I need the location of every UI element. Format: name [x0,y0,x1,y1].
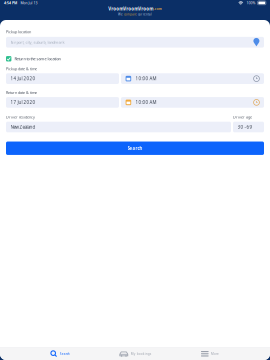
staticText: Pickup location [6,29,31,34]
staticText: 100% [247,0,256,5]
staticText: Driver age [233,115,252,120]
staticText: Search [60,352,70,356]
staticText: 4:54 PM [4,0,17,5]
staticText: We [118,12,124,16]
staticText: Return to the same location [14,56,60,61]
button[interactable]: Search [22,347,97,360]
staticText: 10:00 AM [136,99,157,105]
button[interactable]: 14 Jul 2020 [6,73,119,84]
staticText: Mon Jul 13 [20,0,37,5]
button[interactable]: 30 - 69 [233,122,264,132]
staticText: .com [154,7,162,11]
button[interactable]: More [172,347,247,360]
staticText: My bookings [131,352,151,356]
staticText: 17 Jul 2020 [11,99,36,105]
staticText: VroomVroomVroom [108,6,153,12]
button[interactable]: 10:00 AM [121,73,264,84]
button[interactable]: My bookings [97,347,172,360]
staticText: 10:00 AM [136,76,157,82]
staticText: car rental [137,12,152,16]
staticText: 30 - 69 [238,124,253,130]
button[interactable]: Airport, city, suburb, landmark [6,37,264,48]
staticText: 14 Jul 2020 [11,76,36,82]
staticText: Pickup date & time [6,66,37,71]
button[interactable]: 17 Jul 2020 [6,97,119,108]
staticText: Search [127,145,142,151]
staticText: Return date & time [6,90,37,95]
button[interactable]: New Zealand [6,122,231,132]
staticText: New Zealand [11,124,36,130]
staticText: Driver residency [6,115,35,120]
button[interactable]: Search [6,141,264,155]
staticText: Airport, city, suburb, landmark [11,39,65,45]
button[interactable]: 10:00 AM [121,97,264,108]
staticText: More [211,352,219,356]
button[interactable]: Return to the same location [6,56,264,62]
staticText: compare [124,12,137,16]
